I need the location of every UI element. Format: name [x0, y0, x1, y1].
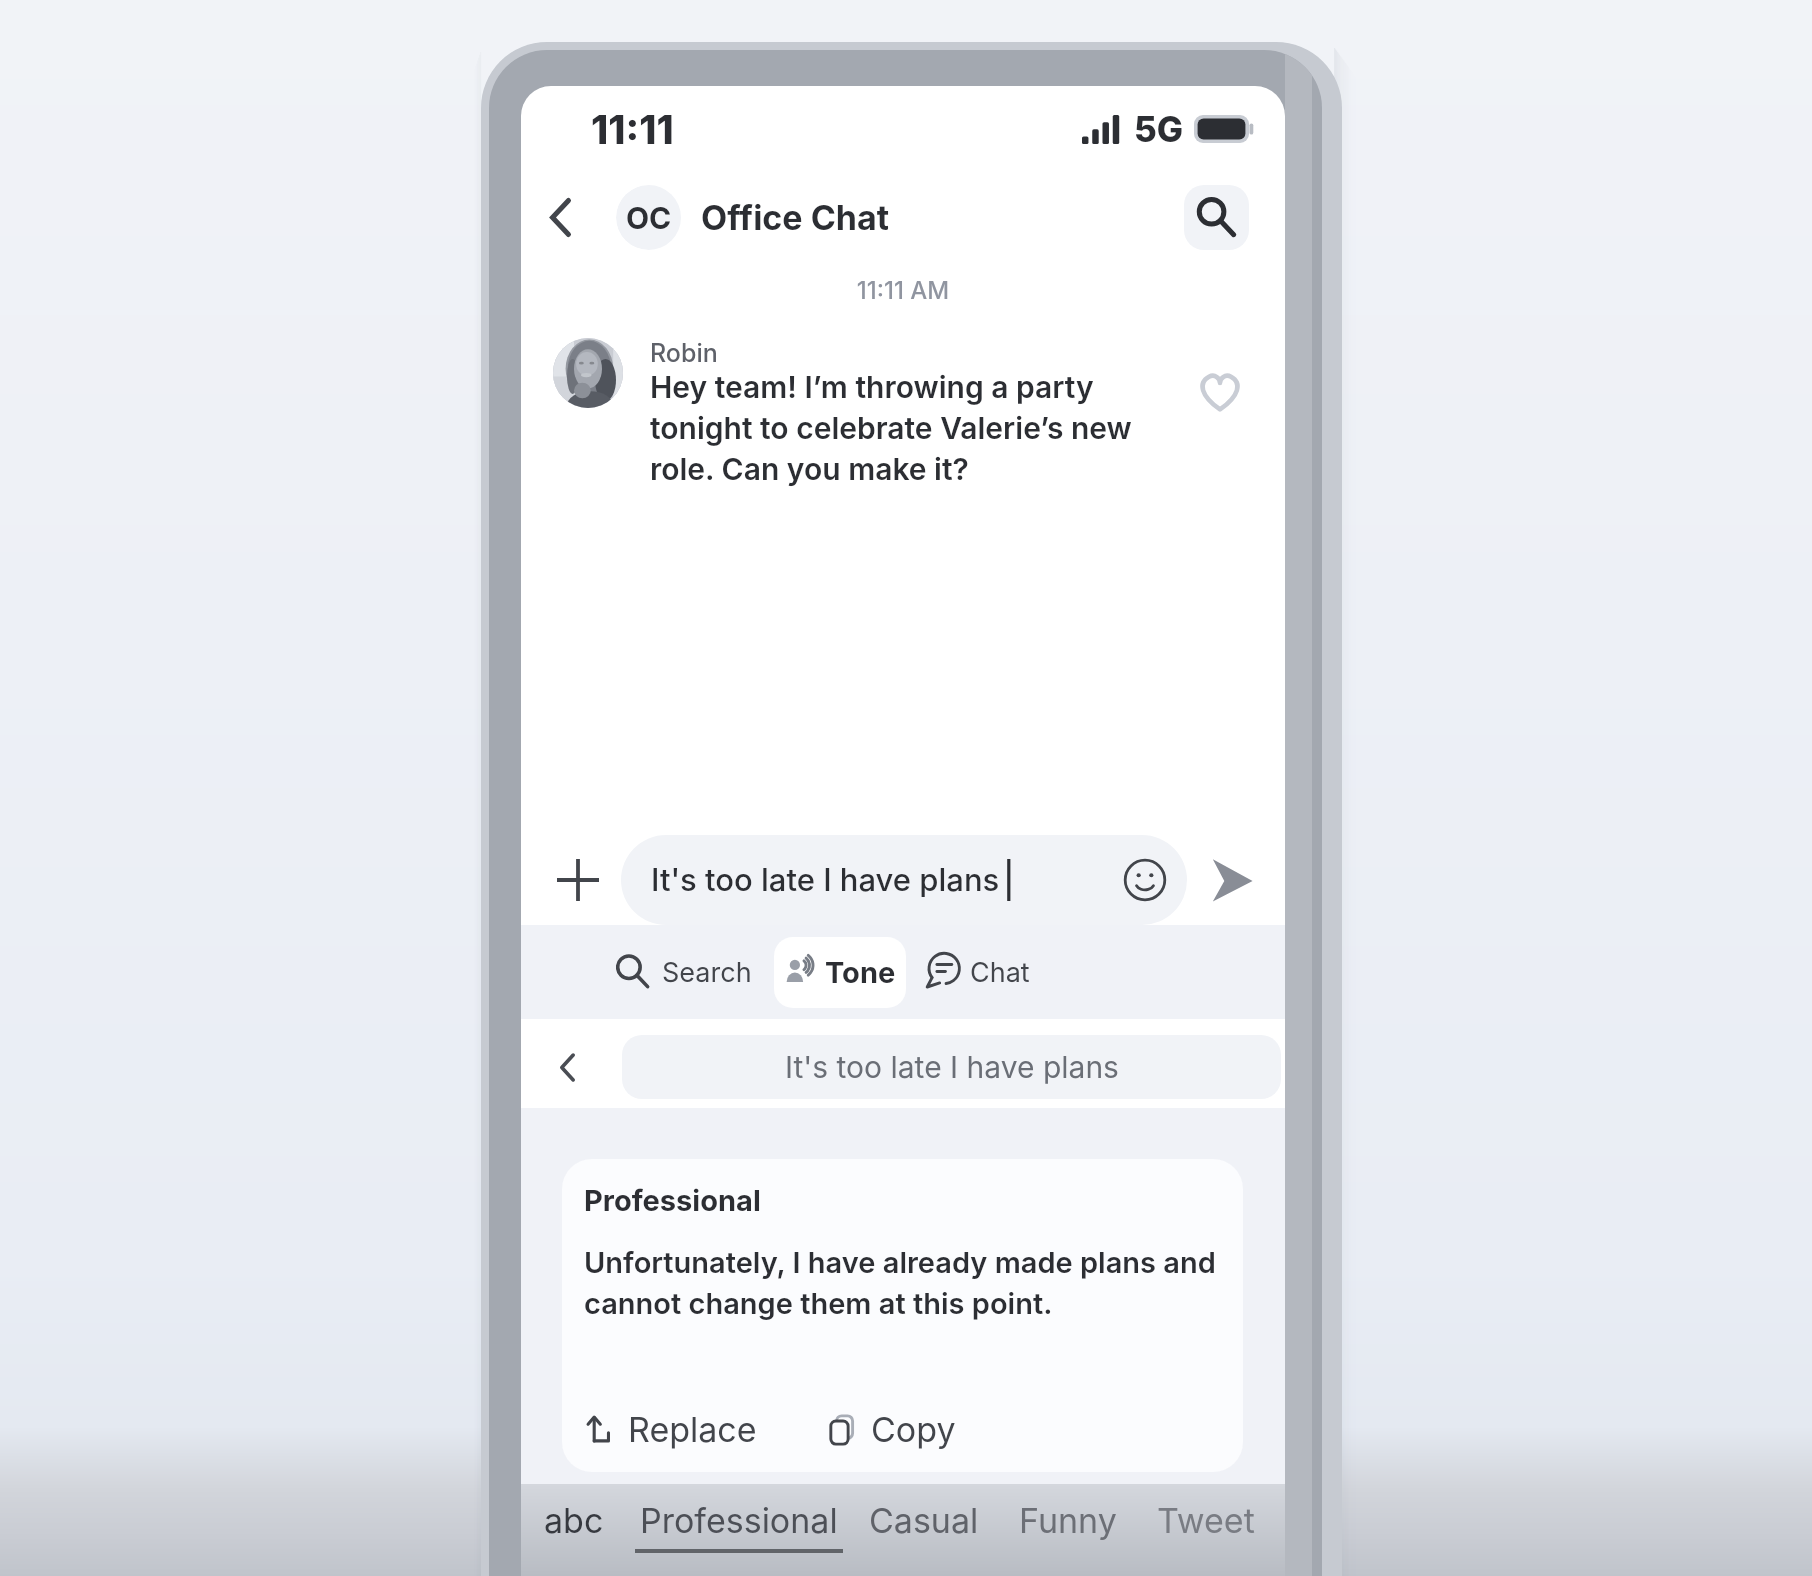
staticText: Tweet — [1157, 1500, 1255, 1541]
button[interactable]: Chat — [920, 938, 1030, 1006]
staticText: Casual — [869, 1500, 979, 1541]
staticText: Unfortunately, I have already made plans… — [584, 1245, 1221, 1321]
staticText: abc — [544, 1500, 604, 1541]
staticText: Replace — [628, 1409, 757, 1450]
staticText: 11:11 — [591, 106, 674, 153]
button[interactable]: Funny — [1019, 1484, 1117, 1541]
button[interactable]: Search — [1184, 185, 1249, 250]
button[interactable]: Copy — [827, 1403, 956, 1456]
button[interactable]: Add attachment — [547, 849, 609, 911]
button[interactable]: Search — [616, 943, 752, 1001]
staticText: Copy — [871, 1409, 956, 1450]
button[interactable]: It's too late I have plans — [622, 1035, 1281, 1099]
button[interactable]: abc — [544, 1484, 604, 1541]
button[interactable]: Like message — [1191, 363, 1248, 420]
staticText: Hey team! I’m throwing a party tonight t… — [650, 369, 1181, 487]
staticText: Funny — [1019, 1500, 1117, 1541]
staticText: 5G — [1134, 108, 1184, 150]
button[interactable]: It's too late I have plans — [621, 835, 1187, 925]
button[interactable]: Replace — [584, 1403, 757, 1456]
staticText: Office Chat — [701, 197, 890, 238]
staticText: Professional — [640, 1500, 838, 1541]
staticText: Professional — [584, 1183, 761, 1218]
button[interactable]: Professional — [635, 1484, 843, 1553]
button[interactable]: Casual — [869, 1484, 979, 1541]
button[interactable]: Back — [530, 187, 590, 247]
staticText: Tone — [825, 955, 896, 990]
button[interactable]: Previous suggestion — [540, 1040, 594, 1094]
staticText: It's too late I have plans — [785, 1049, 1119, 1085]
button[interactable]: Send — [1201, 849, 1263, 911]
button[interactable]: Tone — [774, 937, 906, 1008]
staticText: Search — [662, 956, 752, 989]
staticText: It's too late I have plans — [651, 861, 1000, 899]
staticText: Robin — [650, 338, 718, 368]
staticText: 11:11 AM — [521, 276, 1285, 305]
staticText: OC — [626, 200, 672, 236]
button[interactable]: Tweet — [1157, 1484, 1255, 1541]
staticText: Chat — [970, 956, 1030, 989]
button[interactable]: OC — [616, 185, 890, 250]
